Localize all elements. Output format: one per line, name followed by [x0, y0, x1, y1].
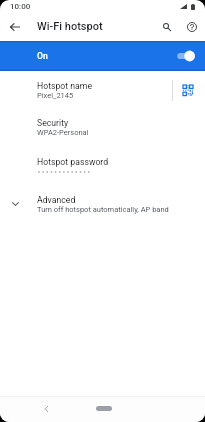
button[interactable]: Help [182, 17, 202, 37]
staticText: Hotspot password [37, 157, 109, 167]
button[interactable]: Advanced [0, 189, 205, 220]
other: Hotspot on [176, 50, 197, 62]
button[interactable]: Hotspot name [0, 75, 205, 108]
button[interactable]: Hotspot password [0, 151, 205, 184]
staticText: 10:00 [10, 2, 31, 11]
button[interactable]: Back [38, 401, 54, 417]
staticText: Advanced [37, 195, 76, 205]
staticText: Turn off hotspot automatically, AP band [37, 205, 169, 214]
button[interactable]: Search [157, 17, 177, 37]
staticText: WPA2-Personal [37, 128, 89, 137]
staticText: Security [37, 118, 69, 128]
staticText: On [37, 51, 48, 61]
staticText: Wi-Fi hotspot [37, 20, 103, 33]
button[interactable]: Home [96, 406, 112, 411]
staticText: Hotspot name [37, 81, 93, 91]
button[interactable]: On [0, 41, 205, 71]
staticText: Pixel_2145 [37, 91, 74, 100]
button[interactable]: Back [5, 17, 25, 37]
button[interactable]: Security [0, 112, 205, 145]
button[interactable]: Share hotspot QR code [176, 78, 200, 102]
